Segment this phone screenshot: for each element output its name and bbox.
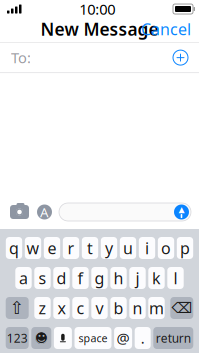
button[interactable]: u bbox=[120, 237, 136, 259]
staticText: m bbox=[149, 297, 164, 319]
button[interactable]: Shift bbox=[6, 297, 29, 319]
staticText: j bbox=[135, 267, 139, 289]
staticText: q bbox=[9, 237, 19, 259]
button[interactable]: h bbox=[110, 267, 127, 289]
staticText: p bbox=[180, 237, 190, 259]
button[interactable]: space bbox=[74, 327, 111, 349]
staticText: 10:00 bbox=[79, 0, 115, 19]
button[interactable]: return bbox=[153, 327, 193, 349]
button[interactable]: p bbox=[177, 237, 193, 259]
button[interactable]: Add Contact bbox=[167, 44, 194, 71]
staticText: ⌫ bbox=[171, 300, 192, 316]
staticText: a bbox=[19, 267, 28, 289]
staticText: ▲ bbox=[178, 205, 184, 214]
button[interactable]: t bbox=[82, 237, 98, 259]
button[interactable]: Delete bbox=[170, 297, 193, 319]
button[interactable]: 123 bbox=[6, 327, 29, 349]
staticText: z bbox=[38, 297, 46, 319]
staticText: Cancel bbox=[141, 18, 191, 40]
staticText: To: bbox=[11, 48, 31, 67]
staticText: e bbox=[47, 237, 56, 259]
staticText: b bbox=[113, 297, 123, 319]
staticText: New Message bbox=[40, 17, 158, 40]
staticText: h bbox=[113, 267, 123, 289]
button[interactable]: z bbox=[34, 297, 51, 319]
button[interactable]: w bbox=[25, 237, 41, 259]
staticText: @ bbox=[117, 328, 130, 348]
staticText: f bbox=[77, 267, 83, 289]
button[interactable]: y bbox=[101, 237, 117, 259]
button[interactable]: c bbox=[72, 297, 89, 319]
staticText: ⇧ bbox=[10, 298, 25, 318]
staticText: n bbox=[132, 297, 142, 319]
button[interactable]: s bbox=[34, 267, 51, 289]
button[interactable]: Cancel bbox=[133, 13, 199, 45]
staticText: r bbox=[67, 237, 74, 259]
staticText: . bbox=[141, 328, 145, 348]
staticText: w bbox=[26, 237, 39, 259]
button[interactable]: a bbox=[15, 267, 32, 289]
button[interactable]: Apps bbox=[37, 203, 52, 221]
staticText: space bbox=[78, 331, 107, 345]
staticText: ☺ bbox=[34, 330, 49, 346]
button[interactable]: Camera bbox=[9, 203, 30, 221]
button[interactable]: l bbox=[167, 267, 184, 289]
staticText: d bbox=[56, 267, 66, 289]
staticText: return bbox=[156, 330, 191, 346]
staticText: c bbox=[76, 297, 84, 319]
staticText: x bbox=[57, 297, 65, 319]
staticText: k bbox=[152, 267, 161, 289]
button[interactable]: n bbox=[129, 297, 146, 319]
button[interactable]: Send bbox=[174, 204, 189, 219]
button[interactable]: d bbox=[53, 267, 70, 289]
button[interactable]: Dictate bbox=[54, 327, 72, 349]
staticText: A bbox=[40, 203, 49, 221]
staticText: y bbox=[105, 237, 113, 259]
staticText: l bbox=[173, 267, 177, 289]
staticText: o bbox=[161, 237, 171, 259]
staticText: s bbox=[38, 267, 46, 289]
button[interactable]: o bbox=[158, 237, 174, 259]
button[interactable]: j bbox=[129, 267, 146, 289]
button[interactable]: g bbox=[91, 267, 108, 289]
staticText: i bbox=[145, 237, 149, 259]
button[interactable]: b bbox=[110, 297, 127, 319]
button[interactable]: Emoji bbox=[31, 327, 51, 349]
staticText: v bbox=[95, 297, 103, 319]
staticText: 123 bbox=[7, 330, 28, 346]
button[interactable]: k bbox=[148, 267, 165, 289]
button[interactable]: e bbox=[44, 237, 60, 259]
button[interactable]: f bbox=[72, 267, 89, 289]
button[interactable]: q bbox=[6, 237, 22, 259]
button[interactable]: r bbox=[63, 237, 79, 259]
button[interactable]: . bbox=[135, 327, 151, 349]
staticText: g bbox=[94, 267, 104, 289]
button[interactable]: x bbox=[53, 297, 70, 319]
button[interactable]: v bbox=[91, 297, 108, 319]
button[interactable]: m bbox=[148, 297, 165, 319]
button[interactable]: @ bbox=[114, 327, 132, 349]
button[interactable]: i bbox=[139, 237, 155, 259]
staticText: t bbox=[87, 237, 93, 259]
staticText: u bbox=[123, 237, 133, 259]
